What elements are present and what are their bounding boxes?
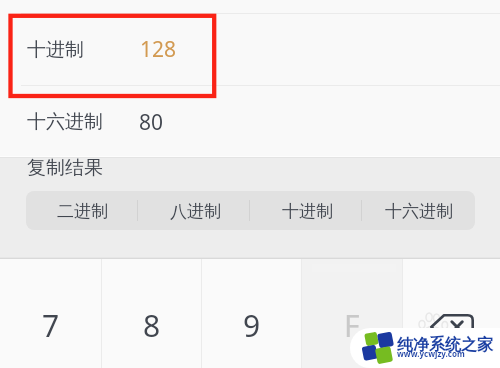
button[interactable]: 八进制 bbox=[139, 191, 251, 230]
button[interactable]: 十进制 bbox=[0, 14, 500, 85]
staticText: 二进制 bbox=[57, 201, 108, 222]
staticText: 十进制 bbox=[282, 201, 333, 222]
button[interactable]: 9 bbox=[202, 259, 301, 368]
staticText: 八进制 bbox=[170, 201, 221, 222]
staticText: 纯净系统之家 bbox=[397, 335, 493, 355]
staticText: 9 bbox=[243, 305, 261, 346]
staticText: 128 bbox=[140, 35, 177, 64]
staticText: 复制结果 bbox=[27, 156, 103, 180]
button[interactable]: 8 bbox=[102, 259, 201, 368]
staticText: 十六进制 bbox=[385, 201, 453, 222]
staticText: 80 bbox=[139, 108, 164, 137]
staticText: 十六进制 bbox=[27, 110, 103, 134]
staticText: www.ycwjzy.com bbox=[397, 348, 465, 359]
staticText: F bbox=[344, 305, 360, 346]
button[interactable]: 十进制 bbox=[251, 191, 363, 230]
staticText: 十进制 bbox=[27, 38, 84, 62]
staticText: 8 bbox=[143, 305, 161, 346]
button[interactable]: Backspace bbox=[403, 259, 500, 368]
button[interactable]: 7 bbox=[0, 259, 101, 368]
button[interactable]: 二进制 bbox=[26, 191, 139, 230]
staticText: 7 bbox=[42, 305, 60, 346]
button[interactable]: F bbox=[302, 259, 402, 368]
button[interactable]: 十六进制 bbox=[0, 86, 500, 156]
button[interactable]: 十六进制 bbox=[363, 191, 475, 230]
